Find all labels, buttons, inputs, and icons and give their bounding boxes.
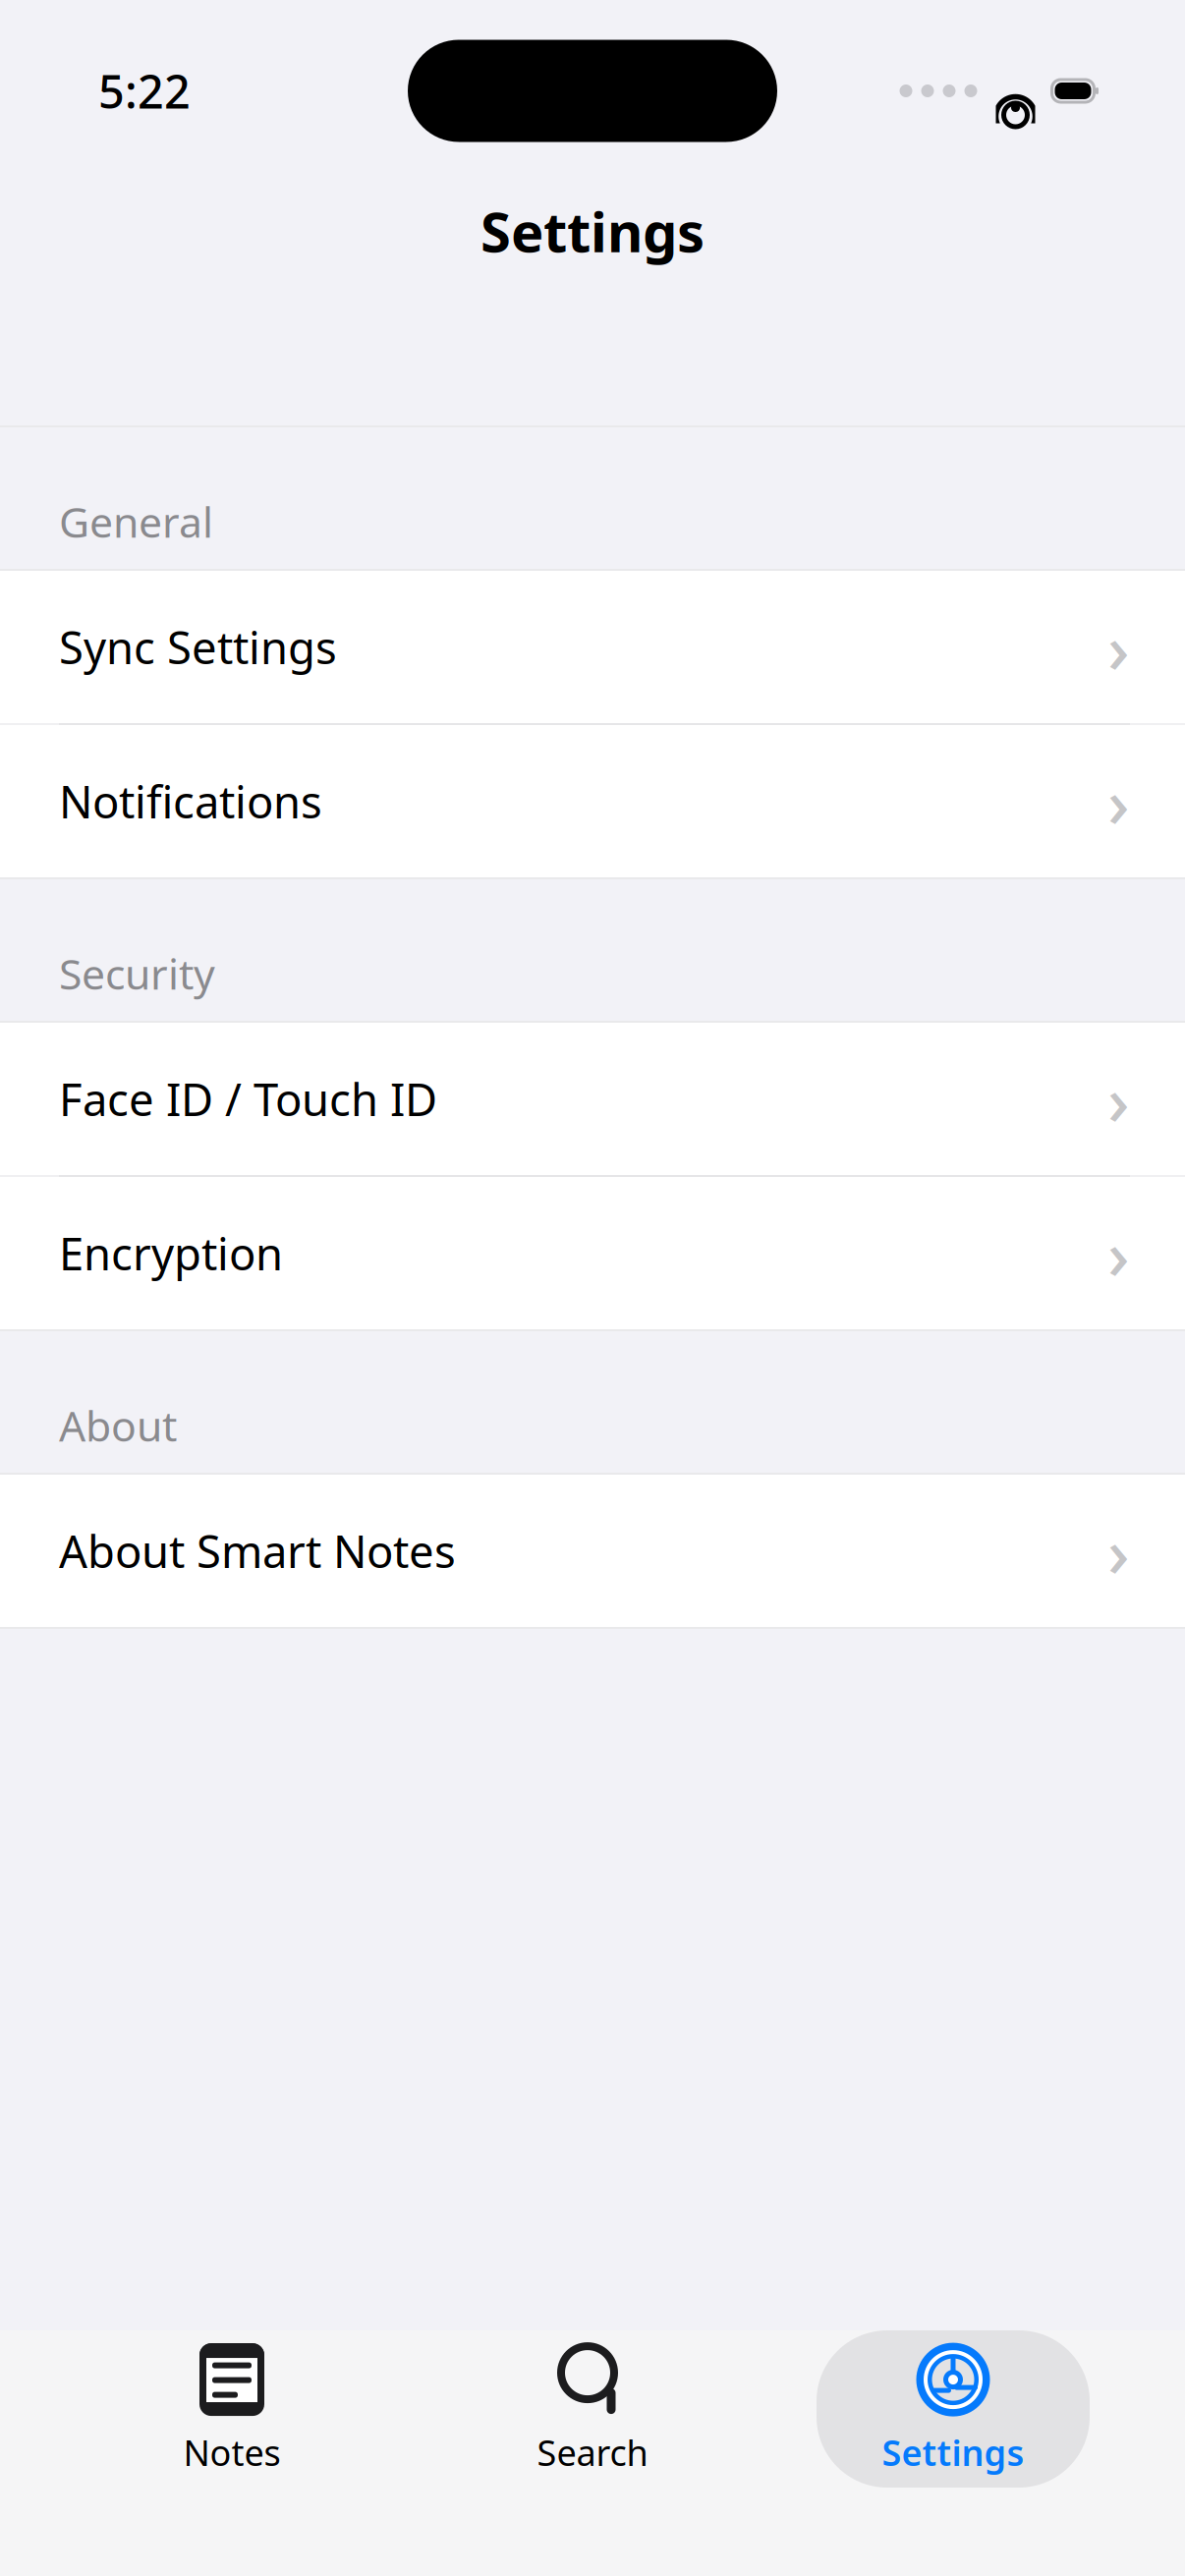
staticText: Settings	[882, 2429, 1024, 2476]
staticText: Security	[59, 945, 215, 1001]
staticText: Search	[537, 2429, 648, 2476]
staticText: 5:22	[98, 60, 191, 121]
button[interactable]: About Smart Notes	[0, 1475, 1185, 1627]
button[interactable]: Sync Settings	[0, 571, 1185, 725]
staticText: Sync Settings	[59, 617, 337, 677]
staticText: About Smart Notes	[59, 1521, 456, 1580]
staticText: ›	[1107, 602, 1130, 692]
button[interactable]: Face ID / Touch ID	[0, 1023, 1185, 1177]
staticText: ›	[1107, 1054, 1130, 1144]
staticText: Settings	[480, 194, 705, 267]
staticText: About	[59, 1397, 177, 1453]
button[interactable]: Settings	[817, 2330, 1090, 2488]
staticText: ›	[1107, 1506, 1130, 1596]
button[interactable]: Notifications	[0, 725, 1185, 877]
staticText: General	[59, 493, 213, 549]
staticText: Notes	[183, 2429, 281, 2476]
staticText: Face ID / Touch ID	[59, 1069, 437, 1128]
button[interactable]: Notes	[95, 2330, 368, 2488]
button[interactable]: Search	[456, 2330, 729, 2488]
button[interactable]: Encryption	[0, 1177, 1185, 1329]
staticText: Encryption	[59, 1224, 283, 1283]
staticText: ›	[1107, 1208, 1130, 1298]
staticText: ›	[1107, 756, 1130, 846]
staticText: Notifications	[59, 772, 322, 831]
